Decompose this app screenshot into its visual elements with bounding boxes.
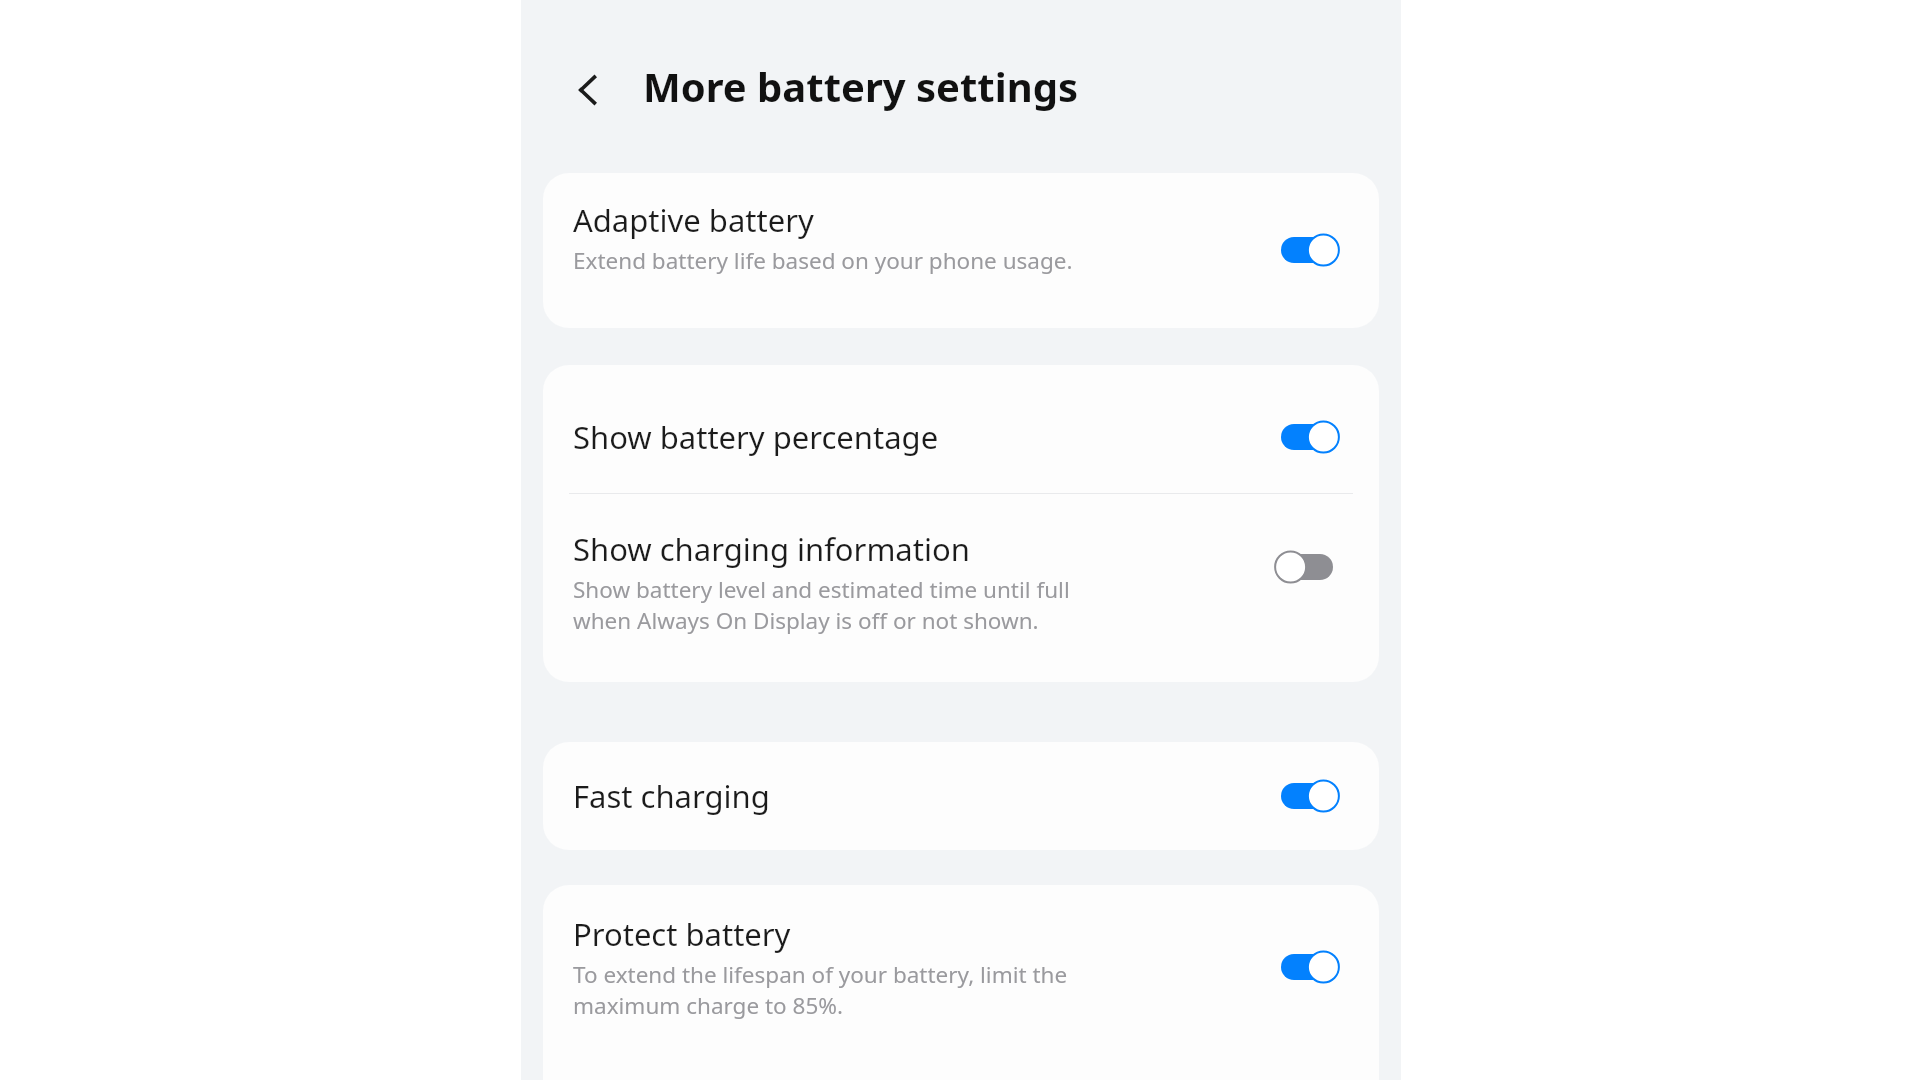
button[interactable]: Adaptive battery [543, 173, 1379, 323]
staticText: Fast charging [573, 775, 770, 817]
button[interactable]: On [1279, 220, 1341, 280]
button[interactable]: On [1279, 766, 1341, 826]
button[interactable]: Show battery percentage [543, 383, 1379, 491]
staticText: Show battery level and estimated time un… [573, 574, 1173, 635]
button[interactable]: Protect battery [543, 887, 1379, 1037]
button[interactable]: Show charging information [543, 502, 1379, 652]
staticText: Show charging information [573, 528, 970, 570]
staticText: Extend battery life based on your phone … [573, 245, 1173, 276]
staticText: To extend the lifespan of your battery, … [573, 959, 1173, 1020]
button[interactable]: On [1279, 937, 1341, 997]
button[interactable]: Off [1279, 537, 1341, 597]
staticText: Show battery percentage [573, 416, 939, 458]
button[interactable]: On [1279, 407, 1341, 467]
staticText: Protect battery [573, 913, 791, 955]
staticText: More battery settings [643, 59, 1079, 113]
button[interactable]: Fast charging [543, 742, 1379, 850]
button[interactable]: Back [561, 62, 617, 118]
staticText: Adaptive battery [573, 199, 814, 241]
